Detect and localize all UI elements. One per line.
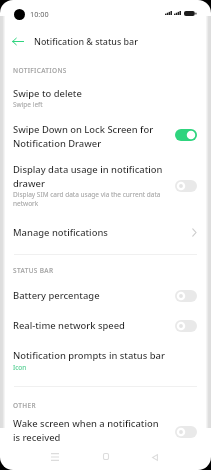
staticText: OTHER	[13, 401, 36, 410]
button[interactable]: Switch off	[175, 290, 197, 302]
staticText: Icon	[13, 363, 27, 372]
button[interactable]: Switch off	[175, 180, 197, 192]
staticText: Swipe to delete	[13, 87, 82, 100]
button[interactable]: Back	[12, 33, 25, 49]
button[interactable]: Battery percentage	[0, 275, 211, 302]
button[interactable]: Wake screen when a notification is recei…	[0, 410, 211, 444]
staticText: 10:00	[30, 9, 49, 19]
button[interactable]: Switch off	[175, 320, 197, 332]
staticText: Real-time network speed	[13, 319, 125, 332]
staticText: Notification & status bar	[34, 35, 138, 47]
button[interactable]: Swipe Down on Lock Screen for Notificati…	[0, 109, 211, 150]
staticText: Display data usage in notification drawe…	[13, 163, 167, 190]
staticText: Wake screen when a notification is recei…	[13, 417, 167, 444]
staticText: Battery percentage	[13, 289, 100, 302]
button[interactable]: Recent apps	[45, 447, 65, 467]
staticText: Display SIM card data usage via the curr…	[13, 190, 167, 208]
staticText: Notification prompts in status bar	[13, 349, 165, 362]
button[interactable]: Notification prompts in status bar	[0, 332, 211, 372]
button[interactable]: Switch off	[175, 426, 197, 438]
staticText: Swipe left	[13, 100, 43, 109]
staticText: Swipe Down on Lock Screen for Notificati…	[13, 123, 167, 150]
button[interactable]: Display data usage in notification drawe…	[0, 150, 211, 208]
button[interactable]: Home	[96, 446, 116, 466]
staticText: STATUS BAR	[13, 266, 54, 275]
button[interactable]: Switch on	[175, 129, 197, 141]
button[interactable]: Back	[145, 447, 165, 467]
button[interactable]: Swipe to delete	[0, 75, 211, 109]
staticText: NOTIFICATIONS	[13, 66, 67, 75]
staticText: Manage notifications	[13, 226, 108, 239]
button[interactable]: Manage notifications	[0, 208, 211, 239]
button[interactable]: Real-time network speed	[0, 302, 211, 332]
